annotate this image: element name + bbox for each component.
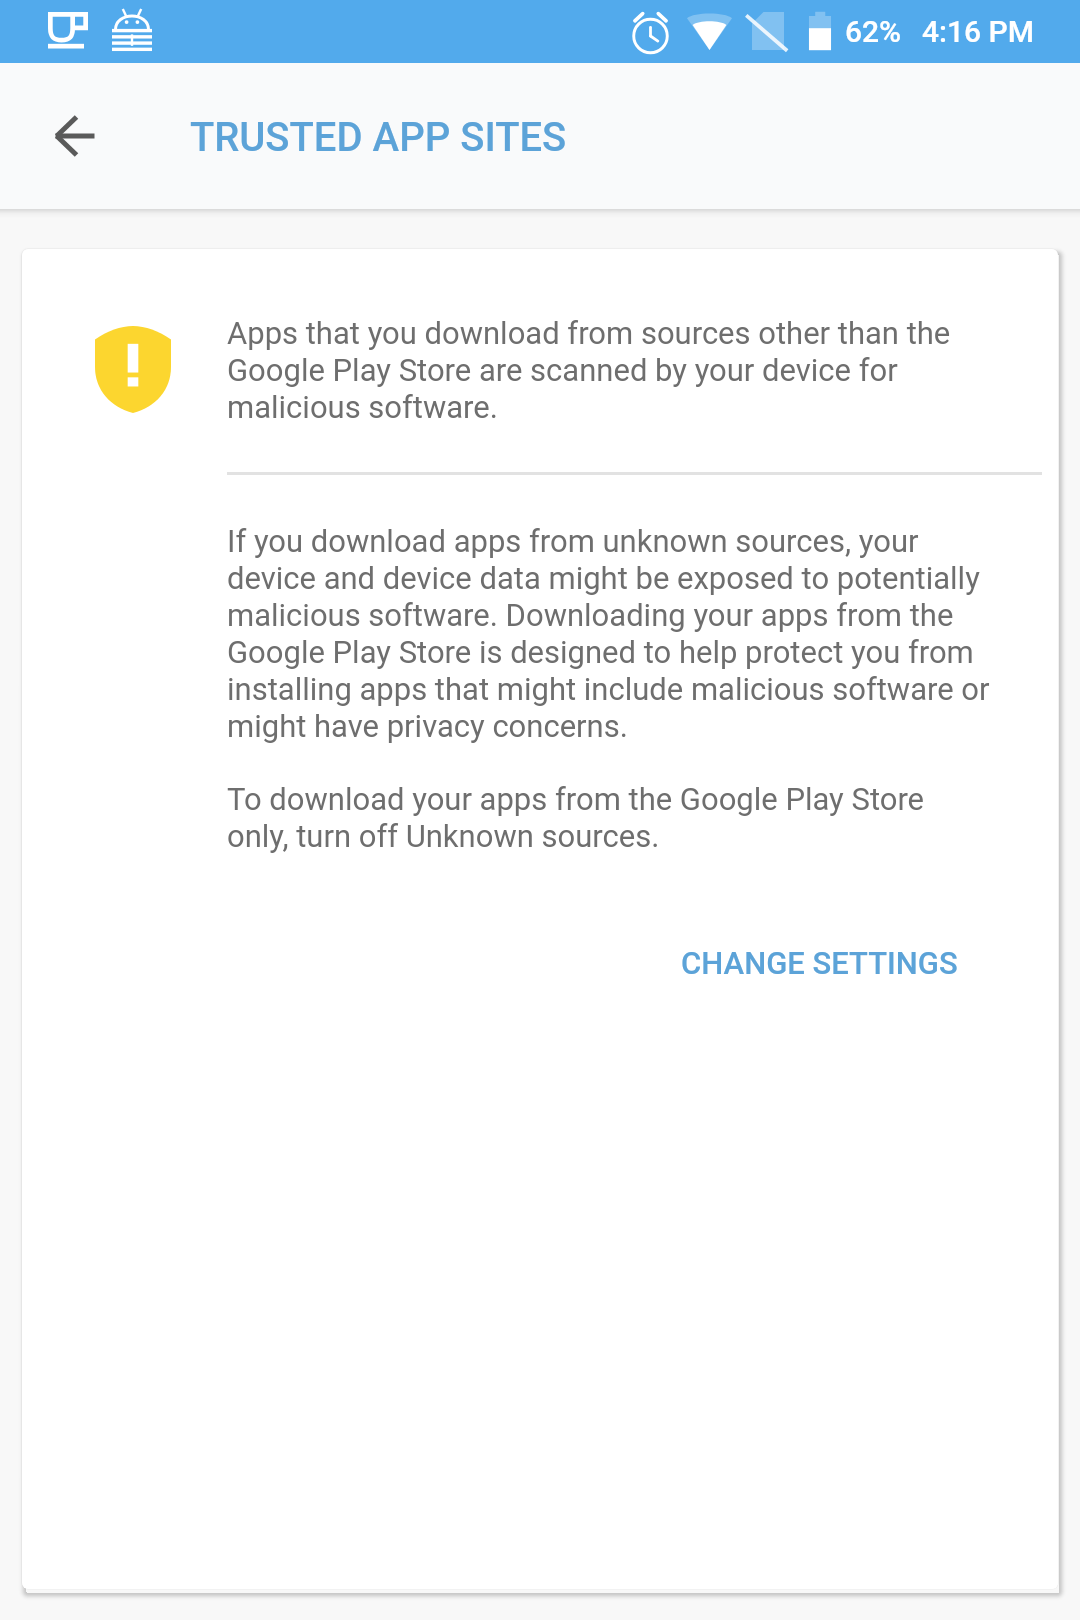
staticText: TRUSTED APP SITES [190,114,567,161]
button[interactable]: Navigate up [21,63,127,209]
staticText: If you download apps from unknown source… [227,523,993,745]
staticText: Apps that you download from sources othe… [227,315,993,426]
staticText: To download your apps from the Google Pl… [227,781,993,855]
staticText: 4:16 PM [922,14,1035,49]
staticText: CHANGE SETTINGS [681,945,958,981]
staticText: 62% [845,14,902,49]
button[interactable]: CHANGE SETTINGS [671,935,968,991]
